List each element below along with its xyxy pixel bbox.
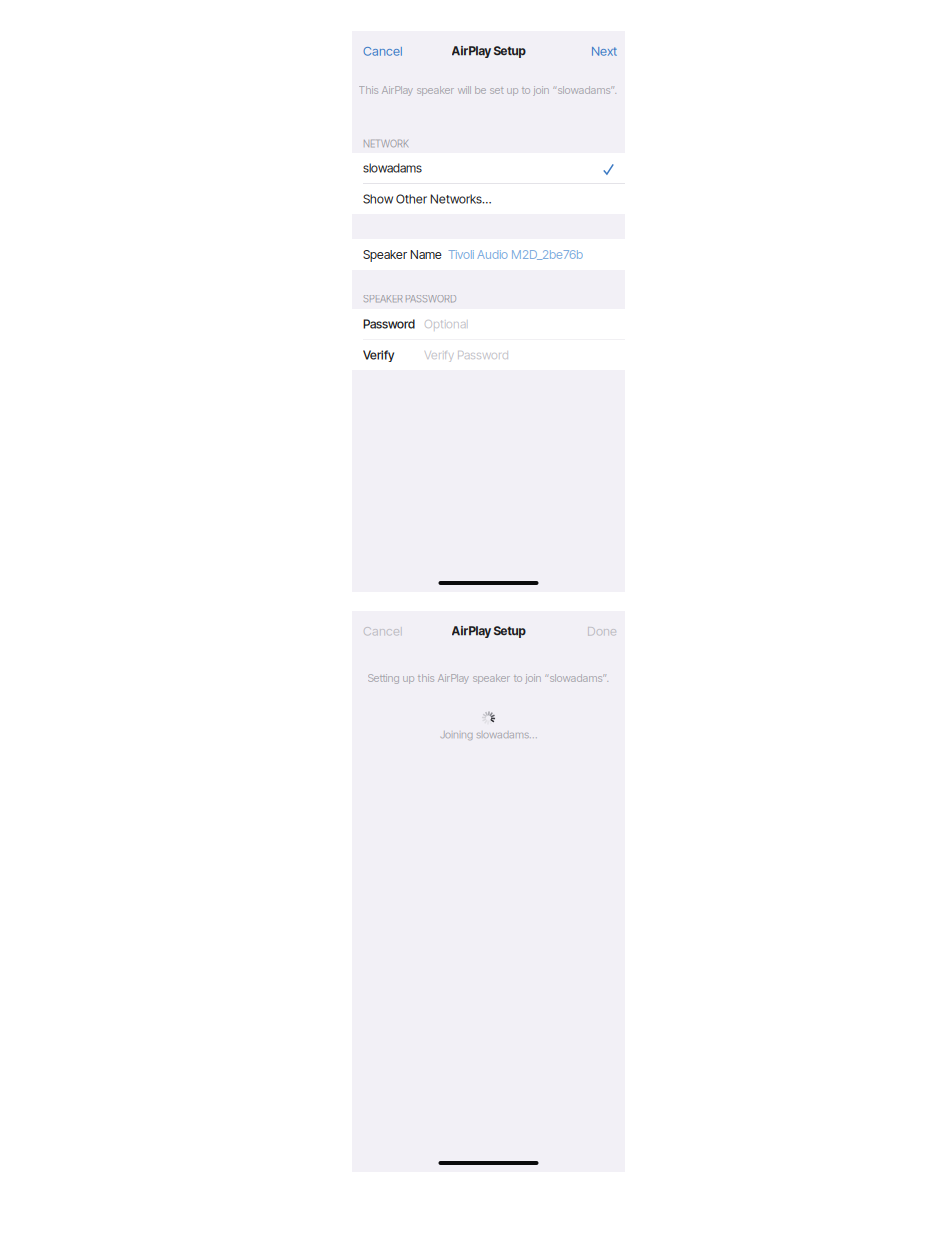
staticText: AirPlay Setup <box>451 44 525 58</box>
button[interactable]: Next <box>583 38 625 64</box>
staticText: Optional <box>424 317 468 331</box>
staticText: Joining slowadams… <box>440 728 537 741</box>
button[interactable]: Cancel <box>352 618 413 644</box>
staticText: Show Other Networks… <box>363 192 491 206</box>
staticText: Done <box>587 623 617 639</box>
staticText: AirPlay Setup <box>451 624 525 638</box>
staticText: SPEAKER PASSWORD <box>363 293 457 305</box>
button[interactable]: Password <box>352 309 625 339</box>
staticText: Password <box>363 317 415 331</box>
button[interactable]: Verify <box>352 340 625 370</box>
staticText: Verify Password <box>424 348 509 362</box>
button[interactable]: Speaker Name <box>352 239 625 270</box>
button[interactable]: Show Other Networks… <box>352 184 625 214</box>
staticText: This AirPlay speaker will be set up to j… <box>358 83 617 97</box>
staticText: Setting up this AirPlay speaker to join … <box>367 671 609 685</box>
button[interactable]: Done <box>579 618 625 644</box>
staticText: Verify <box>363 348 394 362</box>
button[interactable]: Cancel <box>352 38 413 64</box>
staticText: NETWORK <box>363 138 409 150</box>
staticText: Cancel <box>363 623 402 639</box>
staticText: Next <box>591 43 617 59</box>
staticText: Cancel <box>363 43 402 59</box>
staticText: Tivoli Audio M2D_2be76b <box>448 247 583 262</box>
staticText: Speaker Name <box>363 247 442 262</box>
staticText: slowadams <box>363 161 422 175</box>
button[interactable]: slowadams <box>352 153 625 183</box>
